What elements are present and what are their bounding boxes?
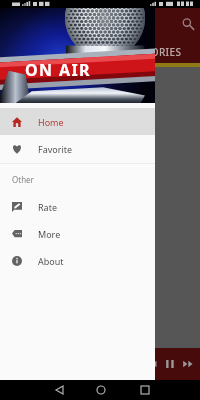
button[interactable]: Rate [0,193,155,220]
staticText: ON AIR [25,59,92,81]
staticText: Other [12,174,34,185]
button[interactable]: Pause [162,356,178,372]
button[interactable]: Home [0,108,155,135]
staticText: More [38,228,61,240]
staticText: Home [38,116,64,128]
button[interactable]: More [0,220,155,247]
staticText: Favorite [38,143,73,155]
staticText: CATEGORIES [118,45,182,59]
staticText: Rate [38,201,57,213]
button[interactable]: Previous [144,356,160,372]
button[interactable]: Search [181,17,195,31]
staticText: About [38,255,64,267]
button[interactable]: Favorite [0,135,155,162]
button[interactable]: About [0,247,155,274]
button[interactable]: Next [180,356,196,372]
